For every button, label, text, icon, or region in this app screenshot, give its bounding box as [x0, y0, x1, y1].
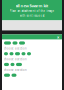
- button[interactable]: Option: [21, 52, 25, 55]
- button[interactable]: Close: [56, 35, 60, 39]
- staticText: choose a section: [4, 57, 27, 61]
- button[interactable]: Option: [4, 52, 8, 55]
- staticText: all new Swarm kit: [15, 3, 48, 8]
- button[interactable]: Option: [15, 52, 20, 55]
- button[interactable]: Option: [10, 63, 14, 66]
- button[interactable]: Option: [27, 52, 31, 55]
- staticText: x: [57, 34, 59, 39]
- button[interactable]: Option: [4, 41, 11, 45]
- staticText: with sent issues at: [19, 14, 44, 17]
- button[interactable]: Option: [4, 74, 10, 77]
- button[interactable]: Option: [4, 63, 9, 66]
- button[interactable]: Option: [16, 63, 22, 66]
- staticText: choose a section: [4, 47, 27, 50]
- button[interactable]: Option: [19, 41, 25, 45]
- button[interactable]: Option: [11, 74, 16, 77]
- button[interactable]: Option: [12, 41, 17, 45]
- staticText: Place an attachment of the image: [9, 9, 54, 13]
- staticText: choose a section: [4, 68, 27, 72]
- button[interactable]: Option: [9, 52, 13, 55]
